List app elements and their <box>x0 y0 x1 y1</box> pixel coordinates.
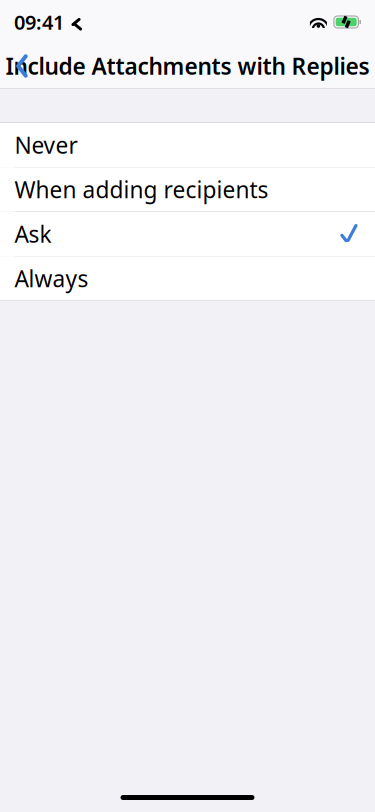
button[interactable]: Always <box>0 256 375 300</box>
button[interactable]: When adding recipients <box>0 167 375 212</box>
staticText: Never <box>14 130 77 160</box>
staticText: Include Attachments with Replies <box>5 51 369 81</box>
button[interactable]: Back <box>0 44 44 88</box>
staticText: Ask <box>14 219 51 249</box>
button[interactable]: Ask <box>0 212 375 256</box>
button[interactable]: Never <box>0 123 375 167</box>
staticText: When adding recipients <box>14 174 268 204</box>
staticText: Always <box>14 263 88 293</box>
staticText: 09:41 <box>14 9 64 35</box>
